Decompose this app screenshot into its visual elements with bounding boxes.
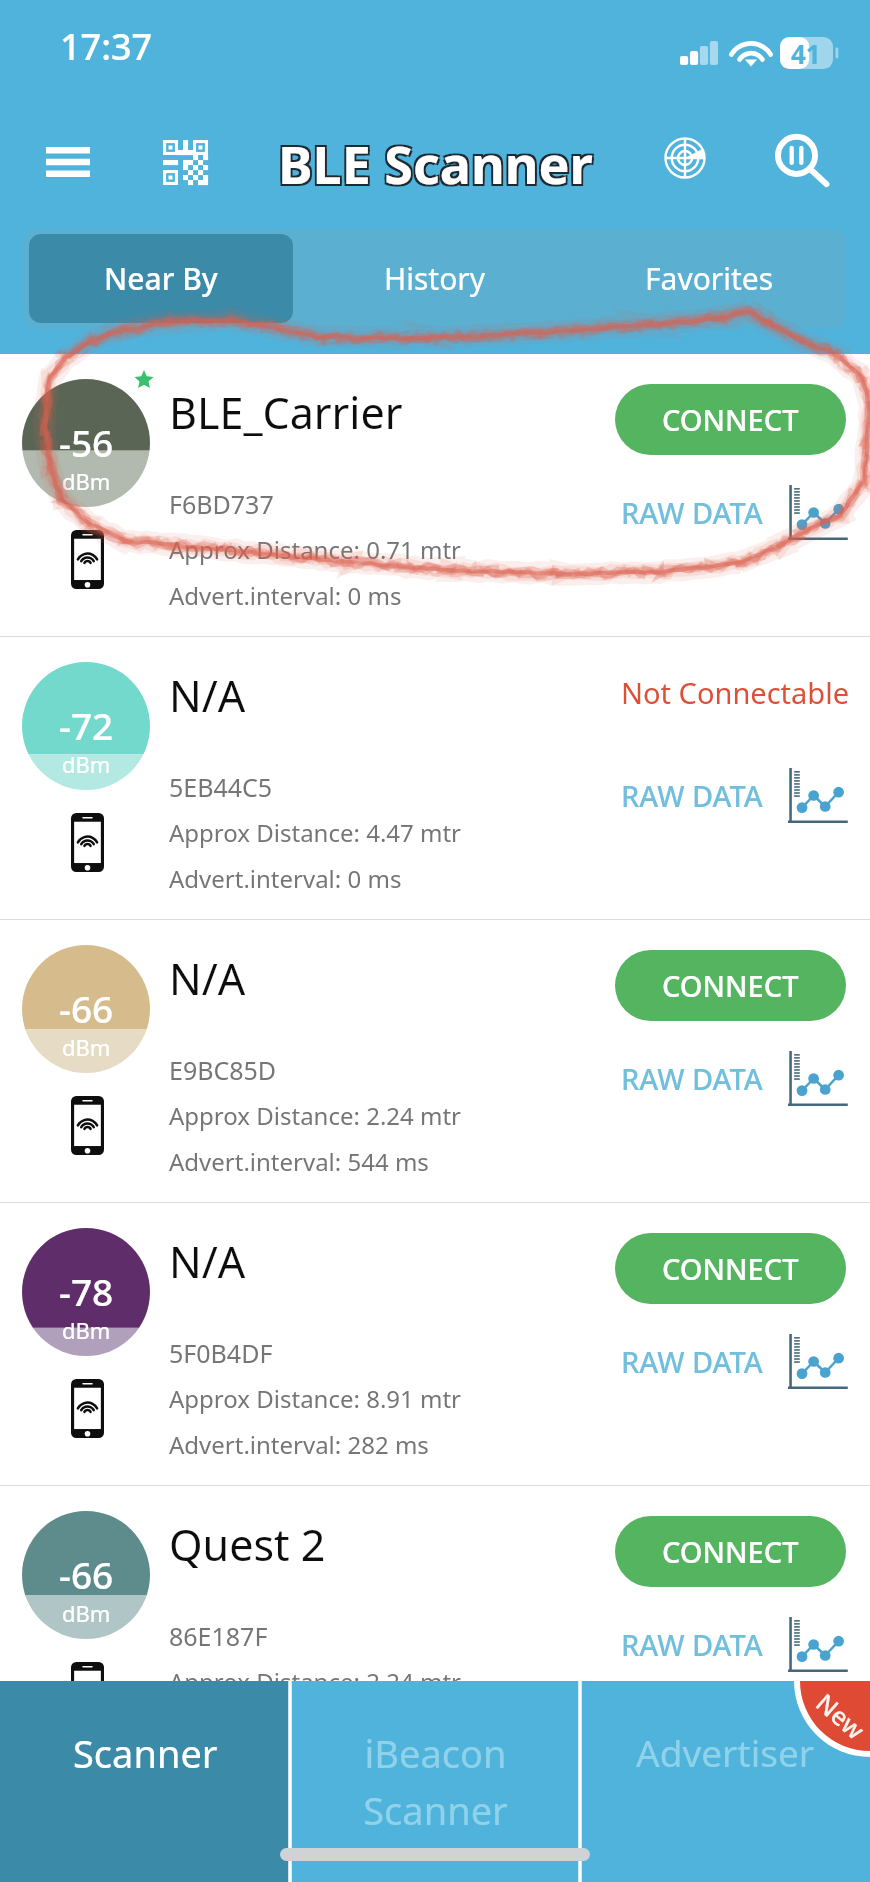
staticText: BLE_Carrier (169, 383, 403, 442)
staticText: Approx Distance: 2.24 mtr (169, 1665, 462, 1698)
staticText: Favorites (645, 258, 774, 299)
button[interactable]: Pause scanning (761, 121, 843, 203)
staticText: 5EB44C5 (169, 770, 273, 804)
staticText: E9BC85D (169, 1053, 277, 1087)
staticText: BLE Scanner (280, 126, 595, 197)
button[interactable]: RAW DATA (621, 1051, 849, 1106)
staticText: dBm (62, 1032, 111, 1062)
staticText: RAW DATA (621, 1059, 763, 1098)
staticText: F6BD737 (169, 487, 274, 521)
staticText: Advert.interval: 0 ms (169, 862, 402, 895)
staticText: CONNECT (662, 400, 799, 439)
button[interactable]: CONNECT (615, 384, 846, 455)
button[interactable]: History (298, 229, 572, 328)
staticText: 5F0B4DF (169, 1336, 273, 1370)
staticText: RAW DATA (621, 493, 763, 532)
staticText: RAW DATA (621, 1625, 763, 1664)
staticText: CONNECT (662, 1532, 799, 1571)
staticText: Advert.interval: 0 ms (169, 579, 402, 612)
button[interactable]: -56 (0, 354, 870, 636)
staticText: BLE Scanner (278, 128, 593, 199)
staticText: Near By (104, 258, 218, 299)
button[interactable]: Near By (29, 234, 293, 323)
staticText: N/A (169, 949, 246, 1008)
button[interactable]: CONNECT (615, 1516, 846, 1587)
staticText: Scanner (73, 1727, 218, 1779)
staticText: RAW DATA (621, 776, 763, 815)
staticText: N/A (169, 666, 246, 725)
button[interactable]: RAW DATA (621, 768, 849, 823)
button[interactable]: -72 (0, 637, 870, 919)
button[interactable]: iBeacon Scanner (290, 1681, 580, 1882)
staticText: -66 (59, 1549, 114, 1599)
button[interactable]: -78 (0, 1203, 870, 1485)
staticText: -72 (59, 700, 114, 750)
button[interactable]: CONNECT (615, 1233, 846, 1304)
staticText: New (809, 1685, 870, 1747)
staticText: 86E187F (169, 1619, 268, 1653)
button[interactable]: Advertiser (580, 1681, 870, 1882)
staticText: dBm (62, 466, 111, 496)
staticText: -78 (59, 1266, 114, 1316)
button[interactable]: Open navigation menu (27, 121, 109, 203)
staticText: Advertiser (636, 1727, 815, 1777)
button[interactable]: RAW DATA (621, 1617, 849, 1672)
staticText: Approx Distance: 8.91 mtr (169, 1382, 462, 1415)
button[interactable]: Scanner (0, 1681, 290, 1882)
button[interactable]: RAW DATA (621, 485, 849, 540)
staticText: Approx Distance: 4.47 mtr (169, 816, 462, 849)
staticText: Advert.interval: 544 ms (169, 1145, 429, 1178)
staticText: N/A (169, 1232, 246, 1291)
button[interactable]: RAW DATA (621, 1334, 849, 1389)
staticText: Quest 2 (169, 1515, 326, 1574)
staticText: dBm (62, 1598, 111, 1628)
button[interactable]: CONNECT (615, 950, 846, 1021)
button[interactable]: -66 (0, 920, 870, 1202)
button[interactable]: Radar view (644, 117, 726, 199)
staticText: CONNECT (662, 966, 799, 1005)
staticText: 17:37 (60, 22, 153, 71)
staticText: RAW DATA (621, 1342, 763, 1381)
staticText: 41 (791, 36, 821, 68)
button[interactable]: Favorites (572, 229, 846, 328)
staticText: -56 (59, 417, 114, 467)
staticText: History (384, 258, 486, 299)
staticText: iBeacon Scanner (363, 1727, 508, 1836)
staticText: -66 (59, 983, 114, 1033)
staticText: Advert.interval: 282 ms (169, 1428, 429, 1461)
staticText: Approx Distance: 0.71 mtr (169, 533, 462, 566)
staticText: BLE Scanner (276, 126, 591, 197)
staticText: dBm (62, 749, 111, 779)
staticText: Not Connectable (621, 673, 849, 712)
staticText: Approx Distance: 2.24 mtr (169, 1099, 462, 1132)
button[interactable]: Not Connectable (621, 673, 849, 712)
button[interactable]: -66 (0, 1486, 870, 1768)
staticText: BLE Scanner (276, 130, 591, 201)
staticText: Advert.interval: 2.24 mtr (169, 1711, 443, 1744)
staticText: BLE Scanner (280, 130, 595, 201)
staticText: CONNECT (662, 1249, 799, 1288)
staticText: dBm (62, 1315, 111, 1345)
button[interactable]: Scan QR code (144, 121, 226, 203)
